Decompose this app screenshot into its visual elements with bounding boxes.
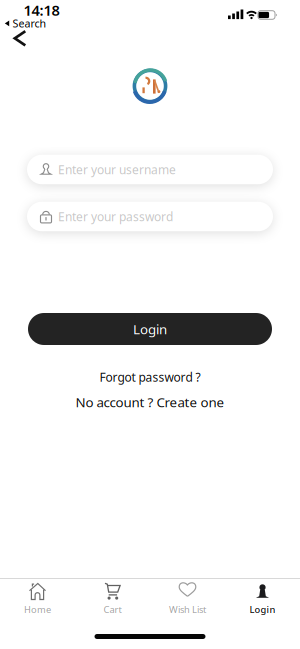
button[interactable]: Wish List [150,579,225,625]
button[interactable]: Enter your password [27,202,273,231]
button[interactable]: Cart [75,579,150,625]
button[interactable]: Home [0,579,75,625]
staticText: Login [133,320,167,338]
staticText: Enter your username [58,161,176,177]
staticText: Search [12,16,46,30]
staticText: Wish List [169,603,206,616]
staticText: 14:18 [23,0,59,20]
button[interactable]: Login [28,313,272,345]
button[interactable]: Login [225,579,300,625]
button[interactable]: Forgot password ? [99,369,200,385]
staticText: Login [249,603,275,616]
staticText: Forgot password ? [99,369,200,385]
button[interactable]: No account ? Create one [75,393,224,411]
staticText: Enter your password [58,208,173,224]
button[interactable]: Enter your username [27,155,273,184]
staticText: Cart [103,603,121,616]
button[interactable]: Back [13,30,28,47]
staticText: No account ? Create one [75,393,224,411]
staticText: Home [24,603,51,616]
